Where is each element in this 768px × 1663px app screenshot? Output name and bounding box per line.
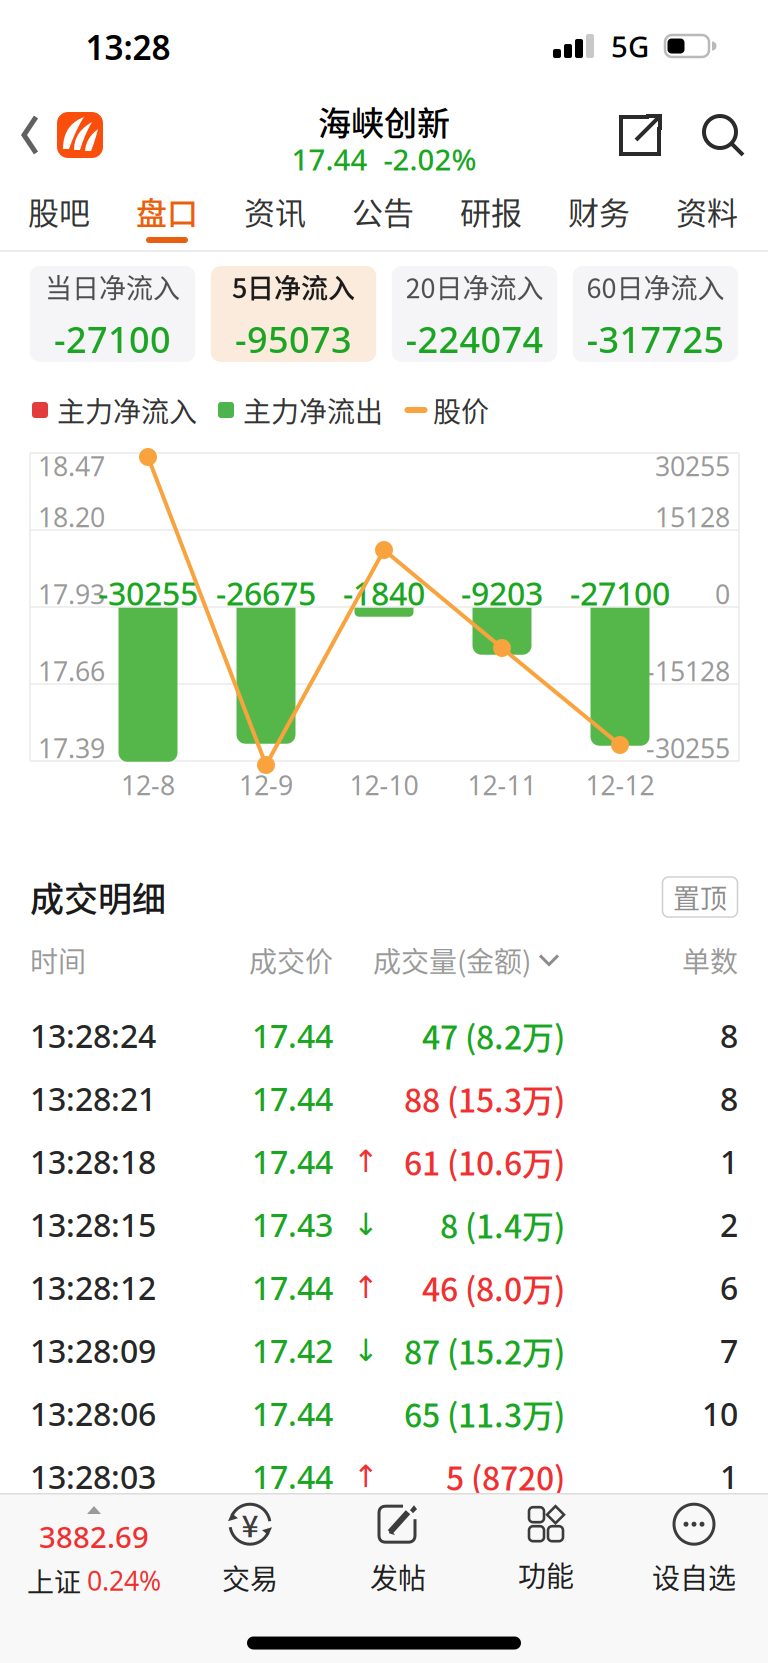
staticText: 设自选 (652, 1554, 736, 1599)
staticText: 成交量(金额) (373, 938, 531, 982)
staticText: 13:28:21 (30, 1077, 156, 1120)
staticText: 股吧 (28, 186, 90, 236)
staticText: 8 (1.4万) (440, 1199, 565, 1250)
button[interactable]: ¥ (222, 1502, 278, 1600)
staticText: 0 (715, 576, 730, 612)
button[interactable]: 研报 (460, 186, 522, 236)
button[interactable]: 财务 (568, 186, 630, 236)
button[interactable]: 股吧 (28, 186, 90, 236)
staticText: 60日净流入 (586, 265, 724, 308)
button[interactable]: 设自选 (652, 1503, 736, 1599)
staticText: 海峡创新 (318, 95, 450, 147)
staticText: 12-12 (585, 767, 654, 803)
staticText: 主力净流出 (243, 388, 383, 432)
staticText: 17.39 (38, 730, 105, 766)
button[interactable]: 60日净流入 (573, 266, 738, 362)
button[interactable]: 置顶 (662, 877, 737, 917)
staticText: 13:28:18 (30, 1140, 156, 1183)
button[interactable]: 当日净流入 (30, 266, 195, 362)
staticText: 30255 (655, 448, 730, 484)
staticText: ↑ (353, 1459, 379, 1494)
staticText: ¥ (241, 1500, 258, 1548)
staticText: 置顶 (673, 875, 727, 918)
staticText: 13:28:12 (30, 1266, 156, 1309)
staticText: 17.44 (252, 1455, 333, 1498)
staticText: 61 (10.6万) (404, 1136, 565, 1187)
staticText: 主力净流入 (57, 388, 197, 432)
staticText: 13:28 (85, 25, 170, 69)
staticText: 上证 (27, 1559, 81, 1602)
staticText: 17.66 (38, 653, 105, 689)
button[interactable]: Share (619, 115, 661, 157)
staticText: ↑ (353, 1270, 379, 1305)
staticText: 8 (720, 1077, 738, 1120)
staticText: -9203 (461, 572, 543, 614)
staticText: 1 (720, 1455, 738, 1498)
staticText: 6 (720, 1266, 738, 1309)
staticText: 17.43 (252, 1203, 333, 1246)
button[interactable]: 5日净流入 (211, 266, 376, 362)
staticText: 1 (720, 1140, 738, 1183)
staticText: -26675 (216, 572, 316, 614)
staticText: -95073 (235, 315, 352, 363)
button[interactable]: App home (57, 112, 103, 158)
button[interactable]: 盘口 (136, 186, 198, 236)
button[interactable]: 20日净流入 (392, 266, 557, 362)
staticText: 5G (611, 26, 649, 65)
staticText: 盘口 (136, 186, 198, 236)
staticText: 15128 (655, 499, 730, 535)
staticText: 18.47 (38, 448, 105, 484)
staticText: 股价 (433, 388, 489, 432)
staticText: 单数 (682, 938, 738, 982)
staticText: 成交价 (249, 938, 333, 982)
staticText: 研报 (460, 186, 522, 236)
staticText: -27100 (570, 572, 670, 614)
staticText: 12-8 (121, 767, 175, 803)
staticText: -317725 (586, 315, 724, 363)
staticText: 5日净流入 (232, 265, 355, 308)
staticText: 12-9 (239, 767, 293, 803)
staticText: 0.24% (87, 1563, 161, 1598)
staticText: 13:28:09 (30, 1329, 156, 1372)
staticText: -27100 (54, 315, 171, 363)
staticText: 成交明细 (30, 870, 166, 924)
staticText: 13:28:24 (30, 1014, 156, 1057)
staticText: 12-10 (349, 767, 418, 803)
staticText: 10 (702, 1392, 738, 1435)
button[interactable]: 功能 (518, 1505, 574, 1597)
staticText: ↓ (353, 1207, 379, 1242)
staticText: 7 (720, 1329, 738, 1372)
button[interactable]: 资料 (676, 186, 738, 236)
staticText: 88 (15.3万) (404, 1073, 565, 1124)
button[interactable]: 公告 (352, 186, 414, 236)
staticText: 17.44 (252, 1014, 333, 1057)
button[interactable]: Search (703, 115, 745, 157)
staticText: 17.42 (252, 1329, 333, 1372)
button[interactable]: Back (22, 115, 42, 155)
staticText: ↓ (353, 1333, 379, 1368)
staticText: 18.20 (38, 499, 105, 535)
button[interactable]: 3882.69 (27, 1506, 161, 1602)
staticText: -30255 (98, 572, 198, 614)
staticText: 17.44 -2.02% (291, 139, 476, 178)
staticText: 时间 (30, 938, 86, 982)
staticText: 13:28:15 (30, 1203, 156, 1246)
staticText: -15128 (646, 653, 730, 689)
staticText: ↑ (353, 1144, 379, 1179)
staticText: 87 (15.2万) (404, 1325, 565, 1376)
button[interactable]: 成交量(金额) (373, 938, 559, 982)
staticText: 46 (8.0万) (422, 1262, 565, 1313)
staticText: -224074 (405, 315, 543, 363)
staticText: 当日净流入 (45, 265, 180, 308)
staticText: 2 (720, 1203, 738, 1246)
staticText: 65 (11.3万) (404, 1388, 565, 1439)
staticText: 13:28:06 (30, 1392, 156, 1435)
staticText: 3882.69 (39, 1517, 149, 1556)
button[interactable]: 发帖 (370, 1503, 426, 1599)
staticText: 17.93 (38, 576, 105, 612)
staticText: -1840 (343, 572, 425, 614)
button[interactable]: 资讯 (244, 186, 306, 236)
staticText: 发帖 (370, 1554, 426, 1599)
staticText: 13:28:03 (30, 1455, 156, 1498)
staticText: 财务 (568, 186, 630, 236)
